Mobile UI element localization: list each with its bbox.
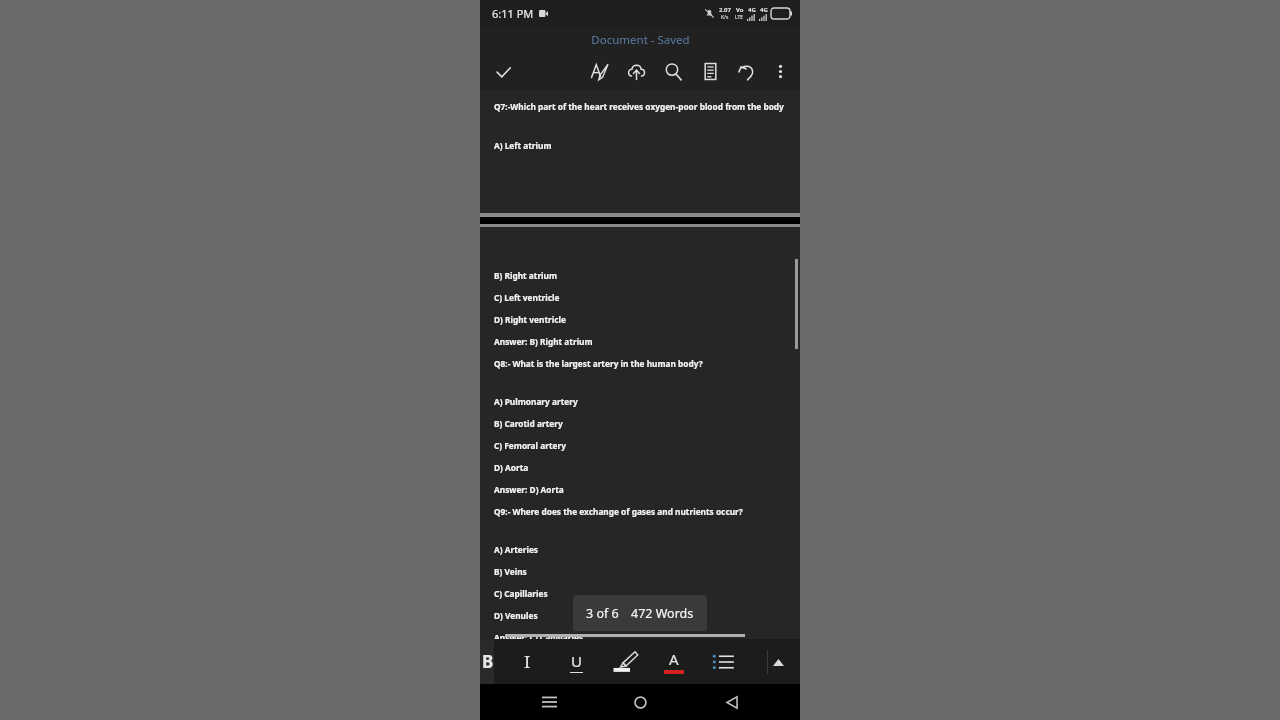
staticText: A <box>669 649 679 669</box>
staticText: Document - Saved <box>591 32 690 48</box>
staticText: C) Capillaries <box>494 588 548 599</box>
button[interactable]: Underline <box>554 639 598 684</box>
button[interactable]: More options <box>767 58 794 85</box>
button[interactable]: Save to cloud <box>621 56 652 87</box>
staticText: B <box>482 650 494 673</box>
staticText: 472 Words <box>631 605 694 622</box>
staticText: Q8:- What is the largest artery in the h… <box>494 358 703 369</box>
button[interactable]: Recent apps <box>526 684 572 720</box>
staticText: Q9:- Where does the exchange of gases an… <box>494 506 743 517</box>
staticText: LTE <box>735 14 744 21</box>
staticText: C) Femoral artery <box>494 440 566 451</box>
staticText: A) Left atrium <box>494 140 552 151</box>
staticText: 4G <box>760 6 768 14</box>
button[interactable]: Done <box>488 57 518 87</box>
staticText: Answer: B) Right atrium <box>494 336 593 347</box>
staticText: B) Veins <box>494 566 527 577</box>
button[interactable]: Italic <box>505 639 549 684</box>
staticText: C) Left ventricle <box>494 292 560 303</box>
staticText: D) Right ventricle <box>494 314 566 325</box>
staticText: Answer: D) Aorta <box>494 484 564 495</box>
staticText: Answer: C) Capillaries <box>494 632 584 639</box>
button[interactable]: Home <box>617 684 663 720</box>
staticText: 3 of 6 <box>586 605 619 622</box>
button[interactable]: Bold <box>480 639 494 684</box>
button[interactable]: Search <box>658 56 689 87</box>
staticText: Q7:-Which part of the heart receives oxy… <box>494 101 784 112</box>
button[interactable]: Expand formatting options <box>764 648 792 676</box>
staticText: D) Venules <box>494 610 538 621</box>
staticText: 6:11 PM <box>492 6 534 21</box>
staticText: B) Right atrium <box>494 270 558 281</box>
button[interactable]: Font color <box>652 639 696 684</box>
button[interactable]: Ink <box>584 56 615 87</box>
button[interactable]: Back <box>709 684 755 720</box>
staticText: 2.07 <box>719 6 731 14</box>
button[interactable]: Undo <box>732 56 763 87</box>
staticText: Vo <box>736 6 744 14</box>
staticText: 4G <box>748 6 756 14</box>
staticText: D) Aorta <box>494 462 529 473</box>
staticText: I <box>524 650 531 673</box>
staticText: U <box>571 651 582 671</box>
staticText: A) Arteries <box>494 544 539 555</box>
staticText: K/s <box>721 14 729 21</box>
button[interactable]: Highlight <box>603 639 647 684</box>
button[interactable]: Document view <box>695 56 726 87</box>
staticText: B) Carotid artery <box>494 418 563 429</box>
button[interactable]: Bulleted list <box>701 639 745 684</box>
staticText: A) Pulmonary artery <box>494 396 578 407</box>
